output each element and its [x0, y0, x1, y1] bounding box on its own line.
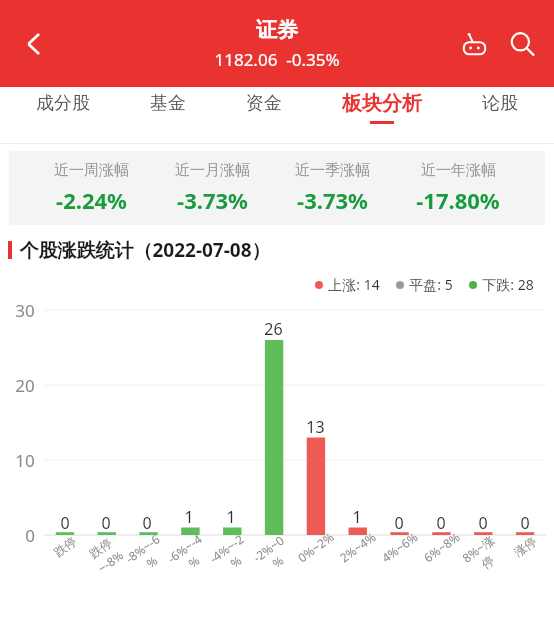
staticText: 20	[15, 374, 35, 397]
staticText: 0	[520, 512, 530, 534]
staticText: 证券	[256, 17, 298, 43]
staticText: -8%~-6%	[121, 530, 173, 580]
staticText: 资金	[246, 92, 282, 115]
staticText: 0%~2%	[294, 528, 337, 565]
staticText: 1182.06 -0.35%	[214, 48, 340, 71]
staticText: 跌停	[51, 533, 79, 560]
staticText: 成分股	[36, 92, 90, 115]
staticText: 6%~8%	[420, 528, 463, 565]
staticText: 下跌: 28	[482, 275, 534, 294]
staticText: 近一年涨幅	[421, 161, 496, 180]
staticText: 0	[436, 512, 446, 534]
staticText: 近一月涨幅	[175, 161, 250, 180]
staticText: 0	[101, 512, 111, 534]
staticText: -17.80%	[416, 185, 500, 215]
staticText: 0	[478, 512, 488, 534]
staticText: 上涨: 14	[328, 275, 380, 294]
button[interactable]: Back	[10, 20, 58, 68]
staticText: 0	[25, 524, 35, 547]
staticText: 2%~4%	[336, 528, 379, 565]
staticText: 1	[184, 506, 194, 528]
staticText: -4%~-2%	[205, 530, 257, 580]
staticText: 1	[226, 506, 236, 528]
staticText: -2.24%	[56, 185, 127, 215]
staticText: -2%~0%	[247, 530, 299, 580]
staticText: 10	[15, 449, 35, 472]
staticText: 1	[352, 506, 362, 528]
staticText: 30	[15, 299, 35, 322]
staticText: 近一季涨幅	[295, 161, 370, 180]
button[interactable]: 成分股	[31, 88, 95, 127]
button[interactable]: 资金	[241, 88, 287, 127]
staticText: 跌停~-8%	[79, 530, 131, 580]
button[interactable]: 板块分析	[337, 87, 427, 128]
staticText: 26	[264, 318, 283, 340]
button[interactable]: 论股	[477, 88, 523, 127]
staticText: 0	[60, 512, 70, 534]
staticText: 个股涨跌统计（2022-07-08）	[19, 237, 271, 263]
button[interactable]: Search	[498, 20, 546, 68]
staticText: 涨停	[511, 533, 539, 560]
staticText: 13	[306, 416, 325, 438]
staticText: -3.73%	[297, 185, 368, 215]
staticText: 8%~涨停	[456, 530, 510, 581]
staticText: -3.73%	[177, 185, 248, 215]
staticText: 4%~6%	[378, 528, 421, 565]
staticText: 平盘: 5	[409, 275, 453, 294]
staticText: 板块分析	[342, 91, 422, 116]
staticText: 0	[394, 512, 404, 534]
staticText: 近一周涨幅	[54, 161, 129, 180]
staticText: 论股	[482, 92, 518, 115]
staticText: 0	[142, 512, 152, 534]
staticText: -6%~-4%	[163, 530, 215, 580]
button[interactable]: 基金	[145, 88, 191, 127]
staticText: 基金	[150, 92, 186, 115]
button[interactable]: Assistant robot	[450, 20, 498, 68]
